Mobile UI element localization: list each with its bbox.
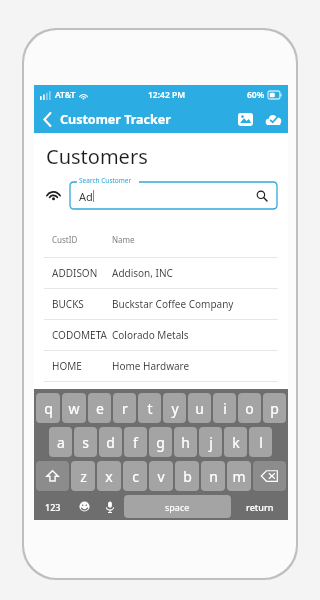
staticText: o — [245, 399, 254, 418]
staticText: 123 — [45, 501, 61, 513]
staticText: q — [44, 399, 53, 418]
staticText: m — [232, 467, 246, 486]
staticText: return — [246, 501, 274, 513]
staticText: Ad — [79, 189, 93, 204]
button[interactable]: q — [36, 393, 60, 423]
button[interactable]: p — [263, 393, 286, 423]
staticText: AT&T — [55, 89, 76, 101]
button[interactable]: space — [124, 495, 231, 518]
button[interactable]: JONES — [44, 382, 278, 412]
staticText: Customer Tracker — [60, 111, 171, 128]
staticText: s — [82, 433, 89, 452]
button[interactable]: Emoji — [72, 495, 96, 518]
staticText: BUCKS — [52, 297, 112, 311]
button[interactable]: x — [97, 461, 121, 491]
staticText: u — [195, 399, 204, 418]
staticText: i — [223, 399, 227, 418]
staticText: b — [183, 467, 192, 486]
staticText: y — [171, 399, 179, 418]
staticText: r — [122, 399, 128, 418]
button[interactable]: n — [201, 461, 225, 491]
staticText: CustID — [52, 234, 112, 245]
staticText: d — [106, 433, 115, 452]
button[interactable]: c — [123, 461, 147, 491]
button[interactable]: r — [113, 393, 136, 423]
button[interactable]: Search — [254, 188, 270, 204]
staticText: k — [232, 433, 240, 452]
staticText: x — [105, 467, 113, 486]
staticText: t — [147, 399, 153, 418]
button[interactable]: z — [71, 461, 95, 491]
staticText: l — [259, 433, 263, 452]
button[interactable]: Back — [34, 105, 60, 133]
staticText: c — [132, 467, 139, 486]
button[interactable]: Backspace — [253, 461, 286, 491]
staticText: z — [80, 467, 87, 486]
button[interactable]: y — [163, 393, 186, 423]
button[interactable]: u — [188, 393, 211, 423]
staticText: p — [270, 399, 279, 418]
staticText: Search Customer — [79, 176, 132, 185]
staticText: Addison, INC — [112, 266, 173, 280]
staticText: HOME — [52, 359, 112, 373]
staticText: j — [209, 433, 213, 452]
button[interactable]: g — [149, 427, 172, 457]
staticText: Name — [112, 234, 135, 245]
staticText: g — [156, 433, 165, 452]
button[interactable]: o — [238, 393, 261, 423]
button[interactable]: l — [249, 427, 272, 457]
button[interactable]: k — [224, 427, 247, 457]
button[interactable]: return — [233, 495, 286, 518]
staticText: 12:42 PM — [148, 89, 186, 101]
button[interactable]: CODOMETAL — [44, 320, 278, 350]
button[interactable]: BUCKS — [44, 289, 278, 319]
staticText: Customers — [46, 143, 148, 170]
staticText: Buckstar Coffee Company — [112, 297, 234, 311]
staticText: Colorado Metals — [112, 328, 189, 342]
staticText: v — [157, 467, 165, 486]
button[interactable]: v — [149, 461, 173, 491]
staticText: JONES — [52, 390, 112, 404]
staticText: ADDISON — [52, 266, 112, 280]
button[interactable]: e — [88, 393, 111, 423]
staticText: e — [96, 399, 104, 418]
button[interactable]: h — [174, 427, 197, 457]
staticText: a — [57, 433, 65, 452]
button[interactable]: w — [62, 393, 86, 423]
button[interactable]: d — [99, 427, 122, 457]
staticText: CODOMETAL — [52, 328, 112, 342]
staticText: 60% — [247, 89, 265, 101]
button[interactable]: m — [227, 461, 251, 491]
button[interactable]: i — [213, 393, 236, 423]
button[interactable]: Shift — [36, 461, 69, 491]
button[interactable]: j — [199, 427, 222, 457]
button[interactable]: ADDISON — [44, 258, 278, 288]
button[interactable]: s — [74, 427, 97, 457]
staticText: h — [181, 433, 190, 452]
button[interactable]: f — [124, 427, 147, 457]
button[interactable]: Photos — [232, 105, 258, 133]
staticText: Jones Supply — [112, 390, 172, 404]
staticText: f — [133, 433, 138, 452]
button[interactable]: t — [138, 393, 161, 423]
button[interactable]: 123 — [36, 495, 70, 518]
button[interactable]: HOME — [44, 351, 278, 381]
staticText: Home Hardware — [112, 359, 190, 373]
button[interactable]: b — [175, 461, 199, 491]
staticText: n — [209, 467, 218, 486]
staticText: space — [165, 501, 190, 513]
button[interactable]: Dictate — [98, 495, 122, 518]
button[interactable]: a — [49, 427, 72, 457]
staticText: w — [68, 399, 80, 418]
button[interactable]: Sync to cloud — [258, 105, 288, 133]
